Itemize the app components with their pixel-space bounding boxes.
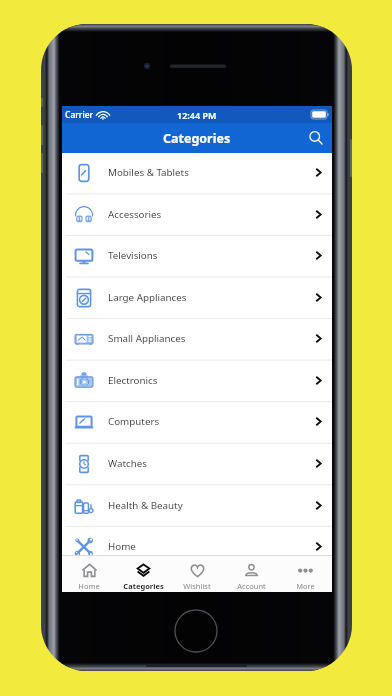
staticText: Home (108, 540, 315, 553)
staticText: Categories (123, 581, 164, 591)
button[interactable]: Health & Beauty (62, 485, 332, 526)
staticText: Account (237, 581, 266, 591)
staticText: Small Appliances (108, 332, 315, 345)
button[interactable]: Electronics (62, 360, 332, 401)
button[interactable]: Home (62, 558, 116, 591)
staticText: Watches (108, 457, 315, 470)
button[interactable]: More (278, 558, 332, 591)
button[interactable]: Televisions (62, 235, 332, 276)
button[interactable]: Mobiles & Tablets (62, 152, 332, 193)
button[interactable]: Categories (116, 558, 170, 591)
staticText: Electronics (108, 374, 315, 387)
staticText: Computers (108, 415, 315, 428)
button[interactable]: Watches (62, 443, 332, 484)
staticText: Home (78, 581, 100, 591)
staticText: Health & Beauty (108, 499, 315, 512)
button[interactable]: Home (62, 526, 332, 567)
button[interactable]: Small Appliances (62, 318, 332, 359)
staticText: Carrier (65, 109, 94, 121)
staticText: Large Appliances (108, 291, 315, 304)
staticText: Wishlist (183, 581, 211, 591)
button[interactable]: Accessories (62, 194, 332, 235)
button[interactable]: Computers (62, 401, 332, 442)
staticText: 12:44 PM (177, 109, 217, 121)
staticText: Mobiles & Tablets (108, 166, 315, 179)
staticText: Categories (163, 130, 231, 147)
button[interactable]: Wishlist (170, 558, 224, 591)
button[interactable]: Account (224, 558, 278, 591)
staticText: More (296, 581, 315, 591)
staticText: Televisions (108, 249, 315, 262)
button[interactable]: Search (305, 127, 327, 149)
button[interactable]: Large Appliances (62, 277, 332, 318)
staticText: Accessories (108, 208, 315, 221)
